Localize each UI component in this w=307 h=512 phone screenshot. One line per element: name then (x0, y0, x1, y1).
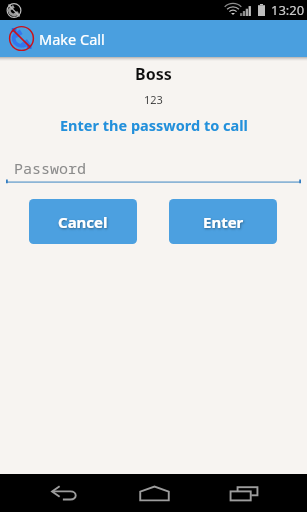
button[interactable]: Cancel (29, 199, 137, 244)
staticText: 13:20 (271, 1, 305, 19)
staticText: Make Call (39, 29, 105, 49)
button[interactable]: Recents (212, 474, 276, 512)
button[interactable]: Home (122, 474, 186, 512)
staticText: 123 (144, 92, 163, 107)
staticText: Cancel (58, 212, 108, 232)
staticText: Password (14, 158, 87, 178)
staticText: Boss (135, 63, 172, 85)
button[interactable]: Password (6, 158, 301, 184)
button[interactable]: Make Call (0, 20, 117, 57)
staticText: Enter the password to call (60, 115, 248, 135)
button[interactable]: Enter (169, 199, 277, 244)
staticText: Enter (203, 212, 244, 232)
button[interactable]: Back (32, 474, 96, 512)
